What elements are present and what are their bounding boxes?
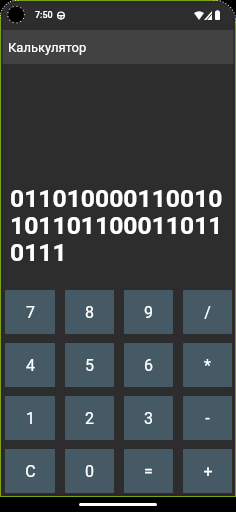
staticText: + bbox=[203, 462, 213, 481]
button[interactable]: 7 bbox=[5, 290, 55, 334]
staticText: - bbox=[205, 409, 210, 428]
button[interactable]: = bbox=[124, 449, 173, 493]
staticText: 8 bbox=[85, 303, 94, 322]
staticText: 0110100001100101011011000110110111 bbox=[10, 184, 232, 267]
staticText: 3 bbox=[144, 409, 153, 428]
button[interactable]: 2 bbox=[65, 396, 114, 440]
button[interactable]: 8 bbox=[65, 290, 114, 334]
staticText: 4 bbox=[26, 356, 35, 375]
staticText: 5 bbox=[85, 356, 94, 375]
button[interactable]: Калькулятор bbox=[0, 30, 236, 64]
button[interactable]: + bbox=[183, 449, 232, 493]
staticText: 7 bbox=[26, 303, 35, 322]
button[interactable]: C bbox=[5, 449, 55, 493]
button[interactable]: 3 bbox=[124, 396, 173, 440]
button[interactable]: 9 bbox=[124, 290, 173, 334]
button[interactable]: 1 bbox=[5, 396, 55, 440]
button[interactable]: 5 bbox=[65, 343, 114, 387]
button[interactable]: / bbox=[183, 290, 232, 334]
staticText: 6 bbox=[144, 356, 153, 375]
staticText: = bbox=[144, 462, 153, 481]
staticText: 9 bbox=[144, 303, 153, 322]
staticText: * bbox=[204, 356, 211, 375]
button[interactable]: 0 bbox=[65, 449, 114, 493]
staticText: 2 bbox=[85, 409, 94, 428]
button[interactable]: * bbox=[183, 343, 232, 387]
staticText: 7:50 bbox=[35, 10, 53, 21]
staticText: / bbox=[204, 303, 211, 322]
staticText: Калькулятор bbox=[8, 40, 87, 55]
button[interactable]: - bbox=[183, 396, 232, 440]
staticText: 1 bbox=[26, 409, 35, 428]
button[interactable]: 6 bbox=[124, 343, 173, 387]
staticText: C bbox=[25, 462, 36, 481]
button[interactable]: 4 bbox=[5, 343, 55, 387]
staticText: 0 bbox=[85, 462, 94, 481]
